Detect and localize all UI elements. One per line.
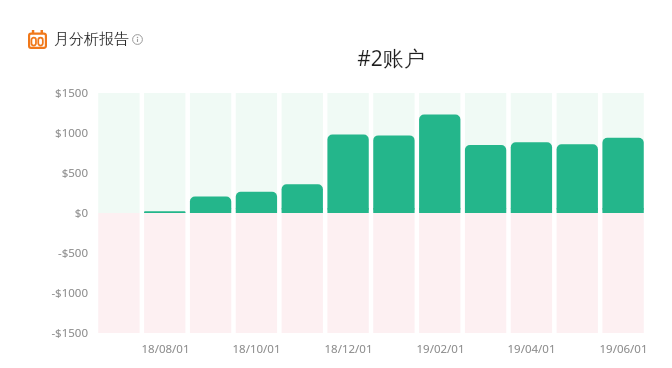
staticText: -$1000 (51, 285, 88, 301)
staticText: $1000 (55, 125, 88, 141)
staticText: $0 (74, 205, 88, 221)
staticText: 19/06/01 (599, 341, 648, 357)
staticText: $500 (61, 165, 88, 181)
staticText: 18/12/01 (324, 341, 373, 357)
staticText: -$500 (57, 245, 88, 261)
staticText: -$1500 (51, 325, 88, 341)
staticText: $1500 (55, 85, 88, 101)
staticText: 18/10/01 (232, 341, 281, 357)
button[interactable]: Monthly report (28, 30, 143, 49)
staticText: 19/02/01 (416, 341, 465, 357)
staticText: 18/08/01 (141, 341, 190, 357)
other: Info (132, 34, 143, 45)
staticText: #2账户 (357, 44, 425, 73)
staticText: 月分析报告 (54, 30, 129, 49)
staticText: 19/04/01 (507, 341, 556, 357)
other: Monthly report (28, 30, 47, 49)
